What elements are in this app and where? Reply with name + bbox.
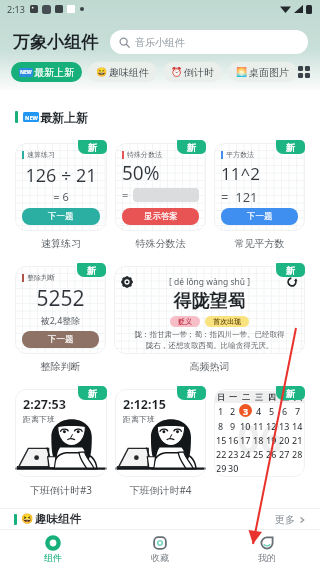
staticText: 下一题 bbox=[48, 334, 74, 345]
staticText: 新 bbox=[87, 265, 96, 276]
staticText: 新 bbox=[286, 388, 295, 399]
staticText: 趣味组件 bbox=[35, 512, 81, 526]
staticText: 2:13 bbox=[7, 3, 25, 15]
button[interactable]: 组件 bbox=[0, 530, 106, 568]
staticText: 18 bbox=[253, 434, 264, 446]
staticText: 😆 bbox=[21, 513, 34, 525]
staticText: 新 bbox=[187, 388, 196, 399]
staticText: 常见平方数 bbox=[214, 237, 305, 250]
staticText: 10 bbox=[240, 420, 251, 432]
staticText: 24 bbox=[240, 448, 251, 460]
staticText: = 121 bbox=[221, 188, 258, 206]
button[interactable]: 🌅 bbox=[228, 62, 297, 82]
button[interactable]: 平方数法 bbox=[214, 143, 305, 231]
staticText: 桌面图片 bbox=[249, 66, 289, 79]
staticText: 新 bbox=[187, 142, 196, 153]
staticText: 六 bbox=[294, 392, 302, 402]
staticText: 27 bbox=[279, 448, 290, 460]
staticText: = 6 bbox=[22, 189, 100, 204]
staticText: 14 bbox=[292, 420, 303, 432]
button[interactable]: 显示答案 bbox=[122, 208, 199, 225]
staticText: 12 bbox=[266, 420, 277, 432]
button[interactable]: 速算练习 bbox=[15, 143, 107, 231]
staticText: 趣味组件 bbox=[109, 66, 149, 79]
staticText: 28 bbox=[292, 448, 303, 460]
staticText: 13 bbox=[279, 420, 290, 432]
button[interactable]: 下一题 bbox=[22, 208, 100, 225]
staticText: 22 bbox=[216, 448, 227, 460]
button[interactable]: ⏰ bbox=[163, 62, 222, 82]
button[interactable]: 我的 bbox=[213, 530, 320, 568]
staticText: 显示答案 bbox=[144, 211, 178, 222]
staticText: 4 bbox=[256, 405, 262, 417]
staticText: 8 bbox=[218, 420, 224, 432]
button[interactable]: 收藏 bbox=[106, 530, 213, 568]
staticText: 四 bbox=[268, 392, 276, 402]
staticText: 06 bbox=[237, 410, 283, 464]
staticText: 陇：指甘肃一带；蜀：指四川一带。已经取得 陇右，还想攻取西蜀。比喻贪得无厌。 bbox=[121, 330, 298, 350]
staticText: 16 bbox=[228, 434, 239, 446]
staticText: 最新上新 bbox=[34, 66, 74, 79]
button[interactable]: 2:27:53 bbox=[15, 389, 107, 477]
staticText: 速算练习 bbox=[15, 237, 107, 250]
staticText: 日 bbox=[217, 392, 225, 402]
button[interactable]: 设置 bbox=[114, 266, 305, 354]
button[interactable]: 全部分类 bbox=[297, 62, 311, 82]
staticText: 音乐小组件 bbox=[135, 36, 185, 49]
staticText: 2:27:53 bbox=[23, 396, 66, 413]
button[interactable]: 下一题 bbox=[22, 331, 99, 348]
button[interactable]: 整除判断 bbox=[15, 266, 106, 354]
staticText: 我的 bbox=[258, 552, 276, 563]
staticText: 29 bbox=[216, 462, 227, 474]
staticText: 下一题 bbox=[48, 211, 74, 222]
staticText: 7 bbox=[295, 405, 301, 417]
staticText: 6 bbox=[282, 405, 288, 417]
staticText: 贬义 bbox=[178, 317, 192, 326]
staticText: 被2,4整除 bbox=[22, 314, 99, 326]
staticText: 下一题 bbox=[247, 211, 273, 222]
staticText: 收藏 bbox=[151, 552, 169, 563]
staticText: 整除判断 bbox=[27, 273, 55, 282]
staticText: 17 bbox=[240, 434, 251, 446]
staticText: 距离下班 bbox=[123, 414, 155, 424]
staticText: 🌅 bbox=[236, 67, 248, 78]
staticText: 11 bbox=[253, 420, 264, 432]
staticText: 19 bbox=[266, 434, 277, 446]
button[interactable]: 2:12:15 bbox=[115, 389, 206, 477]
staticText: 速算练习 bbox=[27, 150, 55, 159]
staticText: 50% bbox=[122, 160, 160, 186]
button[interactable]: 😄 bbox=[88, 62, 157, 82]
button[interactable]: 特殊分数法 bbox=[115, 143, 206, 231]
staticText: 9 bbox=[230, 420, 236, 432]
staticText: 整除判断 bbox=[15, 360, 106, 373]
staticText: 新 bbox=[286, 142, 295, 153]
staticText: 新 bbox=[286, 265, 295, 276]
button[interactable]: 下一题 bbox=[221, 208, 298, 225]
staticText: 126 ÷ 21 bbox=[22, 163, 100, 188]
staticText: 高频热词 bbox=[114, 360, 305, 373]
other: 刷新 bbox=[286, 276, 298, 288]
staticText: 1 bbox=[218, 405, 224, 417]
staticText: 15 bbox=[216, 434, 227, 446]
staticText: 首次出现 bbox=[213, 317, 241, 326]
button[interactable]: 音乐小组件 bbox=[110, 30, 308, 54]
staticText: 30 bbox=[228, 462, 239, 474]
staticText: 更多 bbox=[275, 513, 295, 526]
staticText: 5 bbox=[269, 405, 275, 417]
staticText: 得陇望蜀 bbox=[121, 290, 298, 313]
button[interactable]: NEW bbox=[11, 62, 82, 82]
staticText: 一 bbox=[229, 392, 237, 402]
staticText: 😄 bbox=[96, 67, 108, 78]
staticText: 5252 bbox=[22, 284, 99, 313]
staticText: 二 bbox=[242, 392, 250, 402]
staticText: 新 bbox=[88, 142, 97, 153]
staticText: 倒计时 bbox=[184, 66, 214, 79]
button[interactable]: 更多 bbox=[273, 511, 308, 528]
staticText: 下班倒计时#4 bbox=[115, 483, 206, 497]
staticText: 特殊分数法 bbox=[127, 150, 162, 159]
staticText: 万象小组件 bbox=[13, 32, 98, 53]
staticText: 21 bbox=[292, 434, 303, 446]
other: 设置 bbox=[121, 276, 133, 288]
staticText: NEW bbox=[25, 114, 38, 121]
button[interactable]: 06 bbox=[214, 389, 305, 477]
